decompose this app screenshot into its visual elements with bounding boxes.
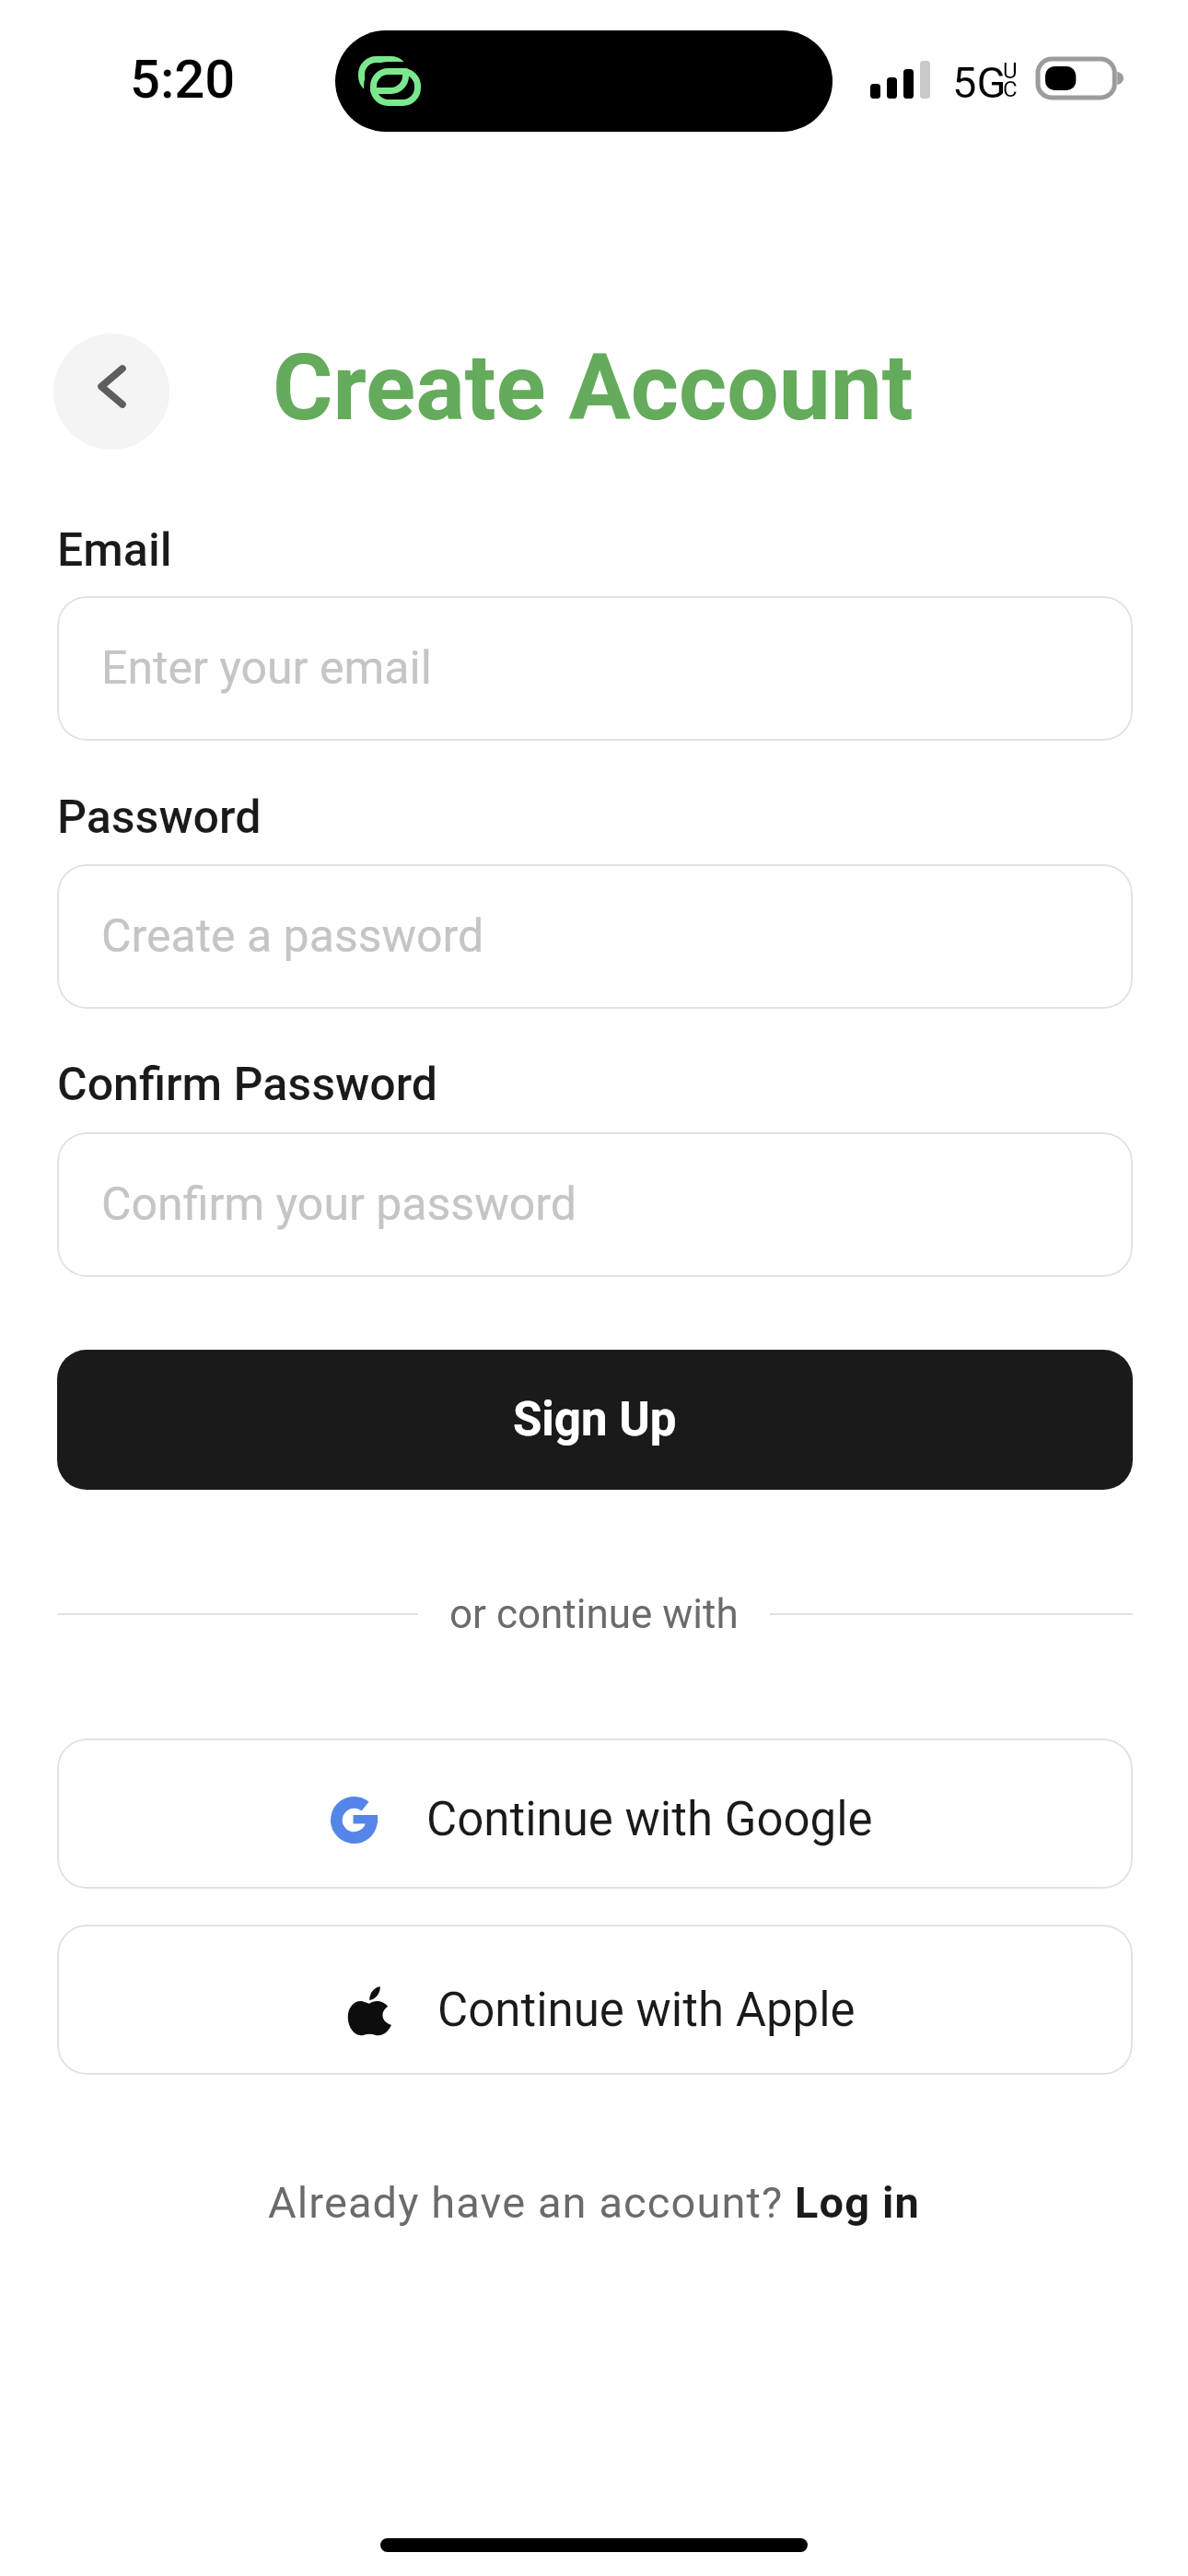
staticText: Confirm your password xyxy=(101,1177,577,1232)
button[interactable]: Create a password xyxy=(57,864,1133,1009)
button[interactable]: Confirm your password xyxy=(57,1132,1133,1277)
staticText: or continue with xyxy=(449,1590,739,1638)
staticText: Enter your email xyxy=(101,641,432,696)
staticText: 5G xyxy=(952,57,1007,108)
staticText: Create a password xyxy=(101,909,484,964)
staticText: Already have an account? Log in xyxy=(268,2177,920,2228)
staticText: Password xyxy=(57,790,262,845)
button[interactable]: Already have an account? Log in xyxy=(259,2172,929,2233)
button[interactable]: Sign Up xyxy=(57,1350,1133,1490)
staticText: Email xyxy=(57,523,172,578)
staticText: Continue with Apple xyxy=(437,1983,856,2038)
button[interactable]: Back xyxy=(53,334,169,450)
staticText: Sign Up xyxy=(513,1392,677,1447)
staticText: 5:20 xyxy=(130,48,236,111)
staticText: Create Account xyxy=(273,334,914,441)
button[interactable]: Continue with Apple xyxy=(57,1925,1133,2075)
staticText: C xyxy=(1003,76,1018,102)
button[interactable]: Enter your email xyxy=(57,596,1133,741)
staticText: Continue with Google xyxy=(426,1792,873,1847)
staticText: U xyxy=(1003,58,1018,84)
staticText: Confirm Password xyxy=(57,1058,438,1112)
button[interactable]: Continue with Google xyxy=(57,1739,1133,1889)
